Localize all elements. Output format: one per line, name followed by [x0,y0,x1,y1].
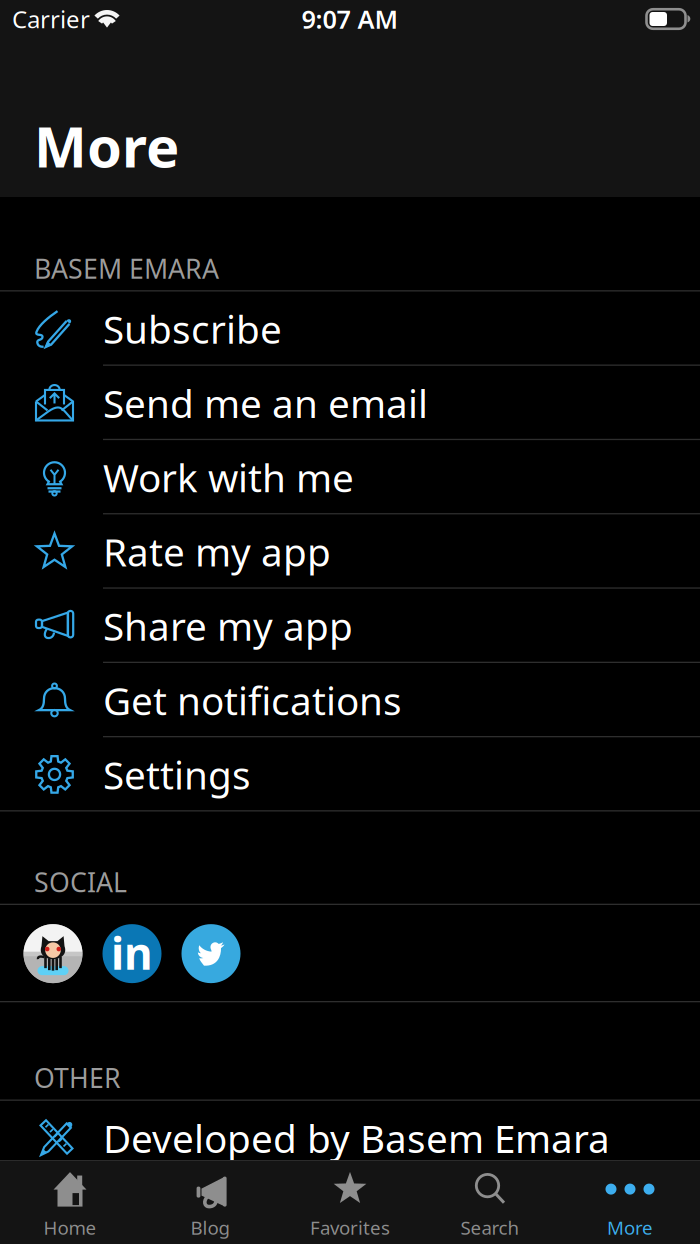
staticText: Settings [103,749,251,800]
button[interactable]: GitHub [20,921,86,987]
button[interactable]: Search [420,1160,560,1244]
button[interactable]: More [560,1160,700,1244]
button[interactable]: Rate my app [0,514,700,589]
staticText: More [607,1215,653,1240]
button[interactable]: Send me an email [0,366,700,440]
staticText: Subscribe [103,303,282,354]
button[interactable]: Work with me [0,440,700,514]
staticText: OTHER [34,1060,121,1095]
button[interactable]: Get notifications [0,663,700,737]
staticText: Favorites [310,1215,390,1240]
staticText: 9:07 AM [301,2,398,36]
staticText: Share my app [103,600,353,651]
button[interactable]: Developed by Basem Emara [0,1101,700,1175]
staticText: Get notifications [103,674,402,726]
staticText: Home [43,1215,96,1240]
staticText: Work with me [103,452,354,503]
staticText: Search [460,1215,519,1240]
button[interactable]: Share my app [0,589,700,663]
staticText: More [34,109,179,183]
staticText: Carrier [12,3,90,35]
button[interactable]: LinkedIn [99,921,165,987]
button[interactable]: Twitter [178,921,244,987]
button[interactable]: Blog [140,1160,280,1244]
staticText: Developed by Basem Emara [103,1112,610,1164]
staticText: Send me an email [103,377,428,429]
staticText: BASEM EMARA [34,251,219,286]
button[interactable]: Subscribe [0,291,700,366]
staticText: SOCIAL [34,864,127,899]
button[interactable]: Home [0,1160,140,1244]
staticText: in [111,923,153,982]
staticText: Blog [190,1215,229,1240]
staticText: Rate my app [103,526,331,577]
button[interactable]: Favorites [280,1160,420,1244]
button[interactable]: Settings [0,737,700,811]
